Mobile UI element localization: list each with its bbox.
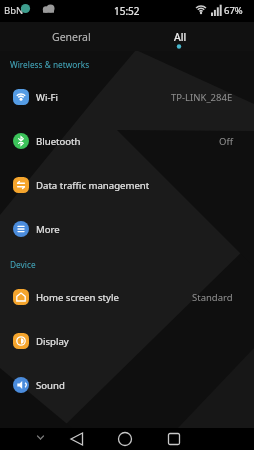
button[interactable] <box>101 428 147 450</box>
staticText: 67% <box>224 4 243 17</box>
staticText: General <box>52 30 91 44</box>
staticText: 15:52 <box>114 4 140 18</box>
staticText: TP-LINK_284E <box>171 91 233 104</box>
staticText: Data traffic management <box>36 179 150 192</box>
staticText: Wireless & networks <box>10 59 90 70</box>
staticText: Wi-Fi <box>36 91 58 104</box>
staticText: Sound <box>36 379 65 392</box>
button[interactable]: Display <box>0 319 254 363</box>
button[interactable]: Home screen style <box>0 275 254 319</box>
button[interactable] <box>147 428 193 450</box>
button[interactable]: Sound <box>0 363 254 407</box>
staticText: All <box>174 30 187 44</box>
button[interactable]: All <box>142 22 218 51</box>
button[interactable]: Bluetooth <box>0 119 254 163</box>
button[interactable]: General <box>33 22 109 51</box>
staticText: Display <box>36 335 69 348</box>
staticText: Bluetooth <box>36 135 81 148</box>
button[interactable]: Wi-Fi <box>0 75 254 119</box>
staticText: More <box>36 223 60 236</box>
button[interactable] <box>55 428 101 450</box>
staticText: Off <box>219 135 233 148</box>
button[interactable]: More <box>0 207 254 251</box>
staticText: Standard <box>192 291 233 304</box>
staticText: BbN <box>4 4 24 17</box>
staticText: Home screen style <box>36 291 119 304</box>
button[interactable]: Data traffic management <box>0 163 254 207</box>
staticText: Device <box>10 259 36 270</box>
